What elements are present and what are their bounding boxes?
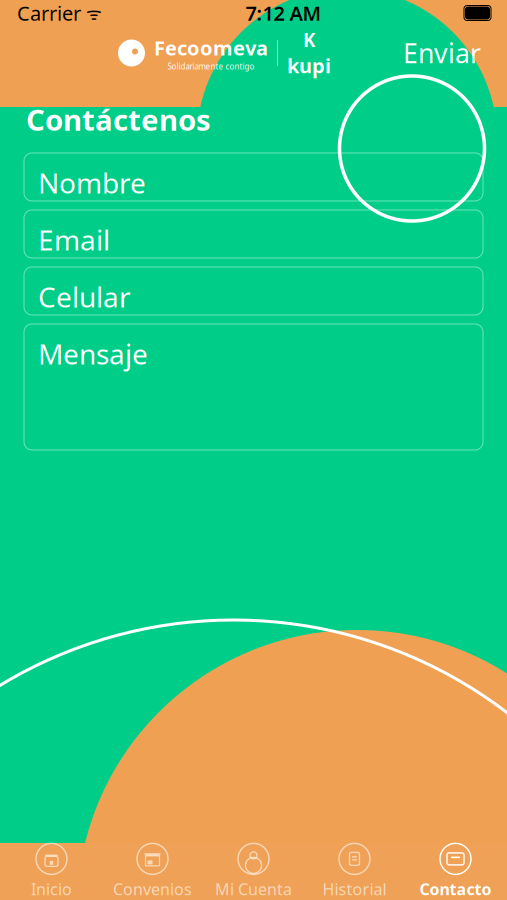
- staticText: Contacto: [419, 878, 491, 900]
- staticText: Fecoomeva: [154, 34, 268, 61]
- staticText: Mi Cuenta: [215, 878, 292, 900]
- button[interactable]: Inicio: [1, 843, 102, 900]
- button[interactable]: Mi Cuenta: [203, 843, 304, 900]
- button[interactable]: Nombre: [24, 153, 483, 201]
- staticText: ᯤ: [81, 1, 102, 24]
- staticText: Celular: [38, 278, 131, 315]
- staticText: Carrier: [17, 0, 81, 26]
- staticText: Nombre: [38, 164, 146, 201]
- staticText: Inicio: [31, 878, 72, 900]
- staticText: Historial: [322, 878, 386, 900]
- button[interactable]: Contacto: [405, 843, 506, 900]
- staticText: Mensaje: [38, 335, 148, 372]
- staticText: Solidariamente contigo: [167, 61, 254, 72]
- button[interactable]: Mensaje: [24, 324, 483, 450]
- staticText: Contáctenos: [26, 100, 211, 139]
- staticText: Enviar: [403, 35, 481, 71]
- staticText: 7:12 AM: [245, 0, 321, 26]
- button[interactable]: Convenios: [102, 843, 203, 900]
- staticText: Convenios: [113, 878, 192, 900]
- button[interactable]: Email: [24, 210, 483, 258]
- staticText: K: [303, 27, 315, 52]
- staticText: Email: [38, 221, 110, 258]
- button[interactable]: Celular: [24, 267, 483, 315]
- button[interactable]: Historial: [304, 843, 405, 900]
- staticText: kupi: [287, 52, 331, 79]
- button[interactable]: Enviar: [389, 27, 495, 79]
